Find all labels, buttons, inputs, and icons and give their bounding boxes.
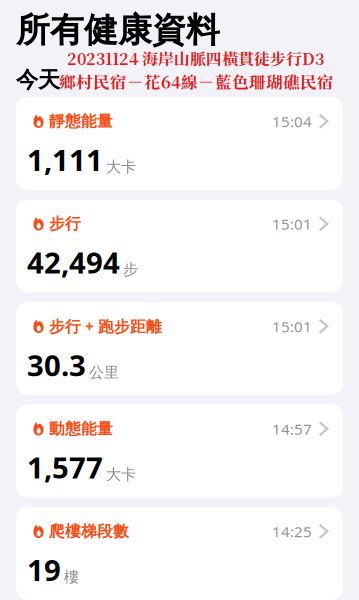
- staticText: 今天: [16, 66, 60, 94]
- staticText: 鄉村民宿－花64線－藍色珊瑚礁民宿: [59, 69, 334, 93]
- staticText: 20231124 海岸山脈四橫貫徒步行D3: [67, 46, 324, 69]
- staticText: 步行 + 跑步距離: [49, 316, 162, 337]
- staticText: 15:01: [272, 316, 312, 337]
- staticText: 19: [27, 550, 61, 590]
- staticText: 步行: [49, 214, 81, 234]
- staticText: 公里: [89, 363, 119, 382]
- button[interactable]: 爬樓梯段數: [16, 507, 343, 600]
- staticText: 30.3: [27, 345, 86, 385]
- staticText: 步: [123, 260, 138, 279]
- staticText: 15:04: [272, 111, 312, 132]
- staticText: 大卡: [106, 158, 136, 177]
- staticText: 樓: [64, 568, 79, 587]
- button[interactable]: 步行: [16, 199, 343, 292]
- staticText: 靜態能量: [49, 111, 113, 131]
- button[interactable]: 步行 + 跑步距離: [16, 302, 343, 395]
- button[interactable]: 動態能量: [16, 404, 343, 497]
- staticText: 15:01: [272, 213, 312, 234]
- staticText: 動態能量: [49, 419, 113, 439]
- staticText: 所有健康資料: [16, 9, 220, 51]
- staticText: 14:57: [272, 418, 312, 439]
- button[interactable]: 靜態能量: [16, 97, 343, 190]
- staticText: 14:25: [272, 521, 312, 542]
- staticText: 1,111: [27, 140, 103, 180]
- staticText: 1,577: [27, 447, 103, 487]
- staticText: 42,494: [27, 242, 120, 282]
- staticText: 爬樓梯段數: [49, 521, 129, 541]
- staticText: 大卡: [106, 465, 136, 484]
